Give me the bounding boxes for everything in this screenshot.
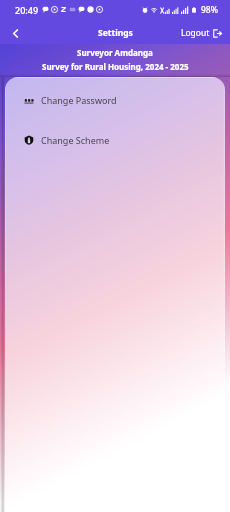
button[interactable]: Logout	[181, 26, 230, 38]
staticText: Change Password	[41, 94, 117, 106]
staticText: Change Scheme	[41, 134, 110, 146]
staticText: Settings	[98, 27, 133, 39]
staticText: 20:49	[15, 4, 39, 16]
staticText: Logout	[181, 27, 210, 39]
staticText: 98%	[201, 4, 218, 16]
button[interactable]: Change Password	[5, 80, 225, 120]
button[interactable]: Change Scheme	[5, 120, 225, 160]
button[interactable]: Back	[0, 19, 26, 44]
staticText: Survey for Rural Housing, 2024 - 2025	[42, 61, 189, 72]
staticText: Surveyor Amdanga	[77, 47, 153, 58]
